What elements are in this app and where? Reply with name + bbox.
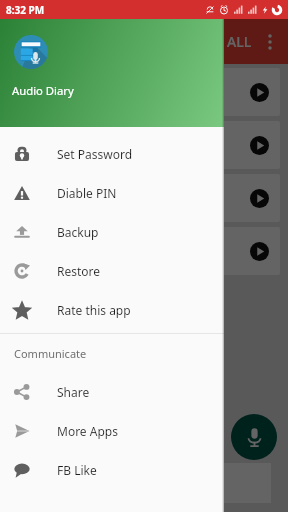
staticText: Communicate [14,346,87,361]
staticText: ALL [227,32,252,51]
button[interactable]: More Apps [0,411,224,450]
staticText: Audio Diary [12,83,74,98]
staticText: Set Password [57,146,133,162]
button[interactable]: Diable PIN [0,173,224,212]
staticText: Backup [57,224,99,240]
button[interactable]: Backup [0,212,224,251]
button[interactable]: More options [256,28,284,56]
staticText: Share [57,384,90,400]
staticText: More Apps [57,423,118,439]
staticText: Restore [57,263,101,279]
button[interactable]: Recording 3 [8,174,280,222]
staticText: 01:11 - 12 Nov [20,148,87,162]
staticText: Recording 4 [20,234,93,252]
staticText: Recording 3 [20,181,93,199]
button[interactable]: Record [231,414,277,460]
button[interactable]: Share [0,372,224,411]
button[interactable]: ALL [222,23,257,60]
staticText: Diable PIN [57,185,117,201]
staticText: Rate this app [57,302,131,318]
button[interactable]: FB Like [0,450,224,489]
button[interactable]: Recording 4 [8,227,280,275]
staticText: 8:32 PM [6,3,45,17]
button[interactable]: Recording 1 [8,68,280,116]
button[interactable]: Set Password [0,134,224,173]
staticText: 00:10 - 12 Nov [20,95,87,109]
button[interactable]: Recording 2 [8,121,280,169]
button[interactable]: Restore [0,251,224,290]
staticText: Recording 1 [20,75,93,93]
staticText: FB Like [57,462,97,478]
button[interactable]: Rate this app [0,290,224,329]
staticText: 03:13 - 12 Nov [20,254,87,268]
